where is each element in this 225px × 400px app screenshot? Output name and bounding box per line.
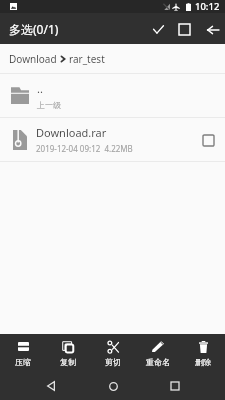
staticText: rar_test <box>69 52 105 66</box>
button[interactable]: 删除 <box>180 334 225 372</box>
staticText: 删除 <box>195 357 211 367</box>
button[interactable]: Recents <box>154 372 196 400</box>
staticText: 重命名 <box>146 357 170 367</box>
button[interactable]: Back <box>30 372 72 400</box>
staticText: 剪切 <box>105 357 121 367</box>
staticText: Download.rar <box>36 125 107 140</box>
staticText: 上一级 <box>37 100 61 110</box>
button[interactable]: Select file <box>198 130 218 150</box>
button[interactable]: Confirm selection <box>145 16 171 42</box>
staticText: 10:12 <box>195 0 220 13</box>
button[interactable]: 压缩 <box>0 334 45 372</box>
button[interactable]: .. <box>0 74 225 117</box>
button[interactable]: 剪切 <box>90 334 135 372</box>
staticText: 多选(0/1) <box>9 21 59 37</box>
staticText: 2019-12-04 09:12 4.22MB <box>36 143 133 154</box>
button[interactable]: Home <box>92 372 134 400</box>
button[interactable]: Download.rar <box>0 118 225 161</box>
button[interactable]: Download <box>0 44 225 73</box>
button[interactable]: 复制 <box>45 334 90 372</box>
button[interactable]: 重命名 <box>135 334 180 372</box>
staticText: .. <box>37 81 43 96</box>
button[interactable]: Back <box>200 17 225 42</box>
staticText: 复制 <box>60 357 76 367</box>
staticText: Download <box>9 52 57 66</box>
staticText: 压缩 <box>15 357 31 367</box>
button[interactable]: Select all <box>171 16 197 42</box>
